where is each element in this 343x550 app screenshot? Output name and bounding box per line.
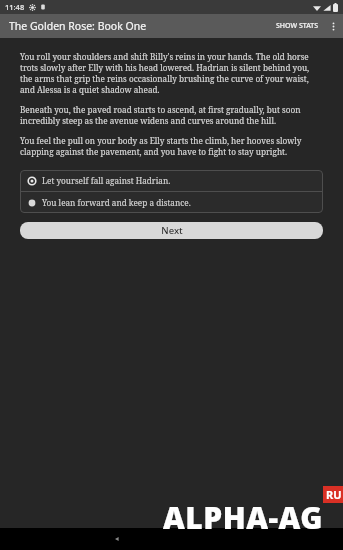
button[interactable]: Let yourself fall against Hadrian.	[20, 170, 323, 191]
staticText: SHOW STATS	[276, 21, 319, 31]
staticText: You roll your shoulders and shift Billy'…	[20, 51, 323, 95]
staticText: Next	[161, 224, 183, 237]
staticText: The Golden Rose: Book One	[9, 19, 147, 33]
staticText: RU	[326, 487, 342, 502]
staticText: ALPHA-AG	[163, 497, 323, 538]
button[interactable]: More options	[323, 16, 343, 36]
staticText: Beneath you, the paved road starts to as…	[20, 104, 323, 126]
button[interactable]: Next	[20, 222, 323, 239]
staticText: Let yourself fall against Hadrian.	[42, 175, 171, 186]
staticText: 11:48	[5, 2, 25, 12]
button[interactable]: You lean forward and keep a distance.	[20, 192, 323, 213]
staticText: You feel the pull on your body as Elly s…	[20, 135, 323, 157]
staticText: You lean forward and keep a distance.	[42, 197, 191, 208]
button[interactable]: SHOW STATS	[272, 17, 323, 35]
